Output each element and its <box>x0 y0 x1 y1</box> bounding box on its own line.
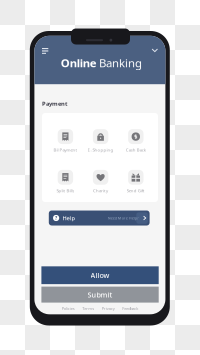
staticText: Terms <box>82 306 94 311</box>
button[interactable]: Allow <box>41 266 159 284</box>
staticText: Policies <box>62 306 75 311</box>
staticText: Charity <box>93 188 108 193</box>
staticText: Banking <box>99 55 142 70</box>
button[interactable]: E - Shopping <box>83 129 118 152</box>
button[interactable]: Menu <box>42 48 52 58</box>
button[interactable]: Policies <box>62 306 75 311</box>
staticText: Send Gift <box>127 188 145 193</box>
staticText: Online <box>61 55 97 70</box>
button[interactable]: Bil Payment <box>48 129 83 152</box>
staticText: Submit <box>87 290 112 299</box>
staticText: Split Bills <box>56 188 74 193</box>
button[interactable]: Split Bills <box>48 170 83 193</box>
staticText: Payment <box>42 100 67 107</box>
staticText: Bil Payment <box>53 147 77 153</box>
button[interactable]: Feedback <box>122 306 138 311</box>
button[interactable]: Send Gift <box>118 170 153 193</box>
button[interactable]: Charity <box>83 170 118 193</box>
button[interactable]: Cash Back <box>118 129 153 152</box>
button[interactable]: Expand <box>152 48 158 52</box>
button[interactable]: Privacy <box>102 306 115 311</box>
button[interactable]: Terms <box>82 306 94 311</box>
staticText: Allow <box>90 270 109 280</box>
staticText: Need More Help? <box>108 215 139 221</box>
button[interactable]: ? <box>49 210 150 225</box>
staticText: Privacy <box>102 306 115 311</box>
staticText: E - Shopping <box>88 147 114 153</box>
staticText: Feedback <box>122 306 138 311</box>
staticText: ? <box>55 215 57 221</box>
button[interactable]: Submit <box>41 287 159 303</box>
staticText: Help <box>63 214 75 222</box>
staticText: Cash Back <box>126 147 146 153</box>
